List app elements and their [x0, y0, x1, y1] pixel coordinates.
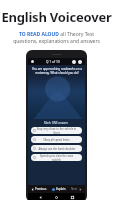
staticText: Always use the hard shoulder: [38, 147, 76, 151]
button[interactable]: Recent apps: [69, 194, 76, 200]
staticText: Next: [71, 187, 78, 191]
staticText: TO READ ALOUD all Theory Test questions,…: [9, 31, 104, 45]
button[interactable]: Home: [53, 194, 60, 200]
staticText: You are approaching roadworks on a motor…: [32, 67, 82, 75]
button[interactable]: Obey all speed limits: [31, 136, 82, 143]
staticText: Previous: [35, 187, 47, 191]
staticText: Speed up to clear the area quickly: [36, 154, 77, 161]
button[interactable]: Speed up to clear the area quickly: [31, 154, 82, 161]
button[interactable]: Read aloud: [78, 60, 82, 64]
staticText: English Voiceover: [1, 8, 112, 26]
staticText: Stop very close to the vehicle in front: [36, 127, 77, 134]
button[interactable]: Flag question: [72, 60, 76, 64]
button[interactable]: Stop very close to the vehicle in front: [31, 127, 82, 134]
button[interactable]: Always use the hard shoulder: [31, 145, 82, 152]
staticText: Explain: [56, 187, 66, 191]
staticText: Q 1 of 10: [46, 60, 60, 64]
button[interactable]: Next: [71, 187, 82, 191]
button[interactable]: Back: [37, 194, 44, 200]
staticText: Mark ONE answer: [44, 121, 69, 125]
staticText: Obey all speed limits: [43, 138, 70, 142]
button[interactable]: Explain: [52, 187, 66, 191]
button[interactable]: Previous: [31, 187, 47, 191]
